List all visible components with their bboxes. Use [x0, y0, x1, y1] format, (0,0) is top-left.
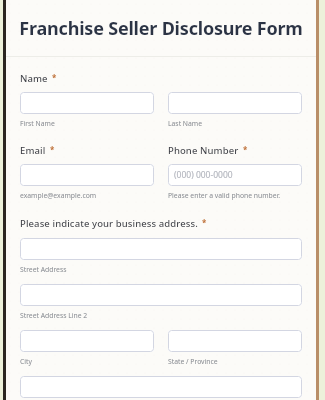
staticText: (000) 000-0000 [174, 169, 233, 181]
button[interactable]: Last Name [168, 92, 302, 114]
button[interactable]: First Name [20, 92, 154, 114]
staticText: First Name [20, 119, 55, 128]
button[interactable]: Postal / Zip Code [20, 376, 302, 398]
staticText: Last Name [168, 119, 203, 128]
button[interactable]: Street Address [20, 238, 302, 260]
button[interactable]: Email [20, 164, 154, 186]
button[interactable]: Street Address Line 2 [20, 284, 302, 306]
staticText: State / Province [168, 357, 218, 366]
staticText: Please indicate your business address. [20, 217, 198, 230]
staticText: * [50, 144, 55, 155]
staticText: Street Address Line 2 [20, 311, 88, 320]
staticText: Please enter a valid phone number. [168, 191, 281, 200]
button[interactable]: State / Province [168, 330, 302, 352]
staticText: City [20, 357, 32, 366]
staticText: example@example.com [20, 191, 97, 200]
staticText: Email [20, 144, 46, 157]
staticText: Street Address [20, 265, 67, 274]
staticText: * [202, 217, 207, 228]
staticText: * [52, 72, 57, 83]
staticText: * [243, 144, 248, 155]
button[interactable]: Phone Number [168, 164, 302, 186]
button[interactable]: City [20, 330, 154, 352]
staticText: Name [20, 72, 48, 85]
staticText: Phone Number [168, 144, 239, 157]
staticText: Franchise Seller Disclosure Form [19, 16, 303, 41]
